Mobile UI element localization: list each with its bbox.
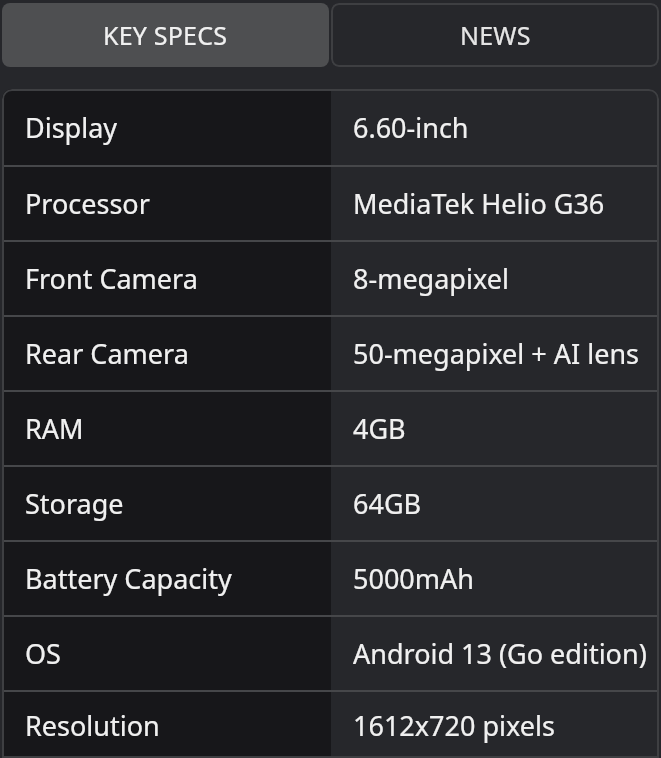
button[interactable]: Storage xyxy=(2,467,659,540)
button[interactable]: Rear Camera xyxy=(2,317,659,390)
staticText: Display xyxy=(25,109,118,146)
button[interactable]: RAM xyxy=(2,392,659,465)
button[interactable]: Display xyxy=(2,89,659,165)
staticText: 64GB xyxy=(353,485,422,522)
staticText: MediaTek Helio G36 xyxy=(353,185,605,222)
button[interactable]: OS xyxy=(2,617,659,690)
staticText: 6.60-inch xyxy=(353,109,469,146)
button[interactable]: Resolution xyxy=(2,692,659,758)
staticText: RAM xyxy=(25,410,84,447)
staticText: KEY SPECS xyxy=(103,18,228,52)
staticText: Front Camera xyxy=(25,260,198,297)
staticText: Battery Capacity xyxy=(25,560,232,597)
staticText: 4GB xyxy=(353,410,406,447)
staticText: 8-megapixel xyxy=(353,260,509,297)
button[interactable]: Front Camera xyxy=(2,242,659,315)
button[interactable]: Battery Capacity xyxy=(2,542,659,615)
staticText: 50-megapixel + AI lens xyxy=(353,335,640,372)
staticText: Processor xyxy=(25,185,150,222)
button[interactable]: KEY SPECS xyxy=(2,3,329,67)
button[interactable]: NEWS xyxy=(331,3,659,67)
staticText: Resolution xyxy=(25,707,160,744)
staticText: OS xyxy=(25,635,61,672)
staticText: 1612x720 pixels xyxy=(353,707,555,744)
staticText: NEWS xyxy=(460,18,531,52)
staticText: Rear Camera xyxy=(25,335,189,372)
button[interactable]: Processor xyxy=(2,167,659,240)
staticText: Storage xyxy=(25,485,124,522)
staticText: Android 13 (Go edition) xyxy=(353,635,647,672)
staticText: 5000mAh xyxy=(353,560,474,597)
